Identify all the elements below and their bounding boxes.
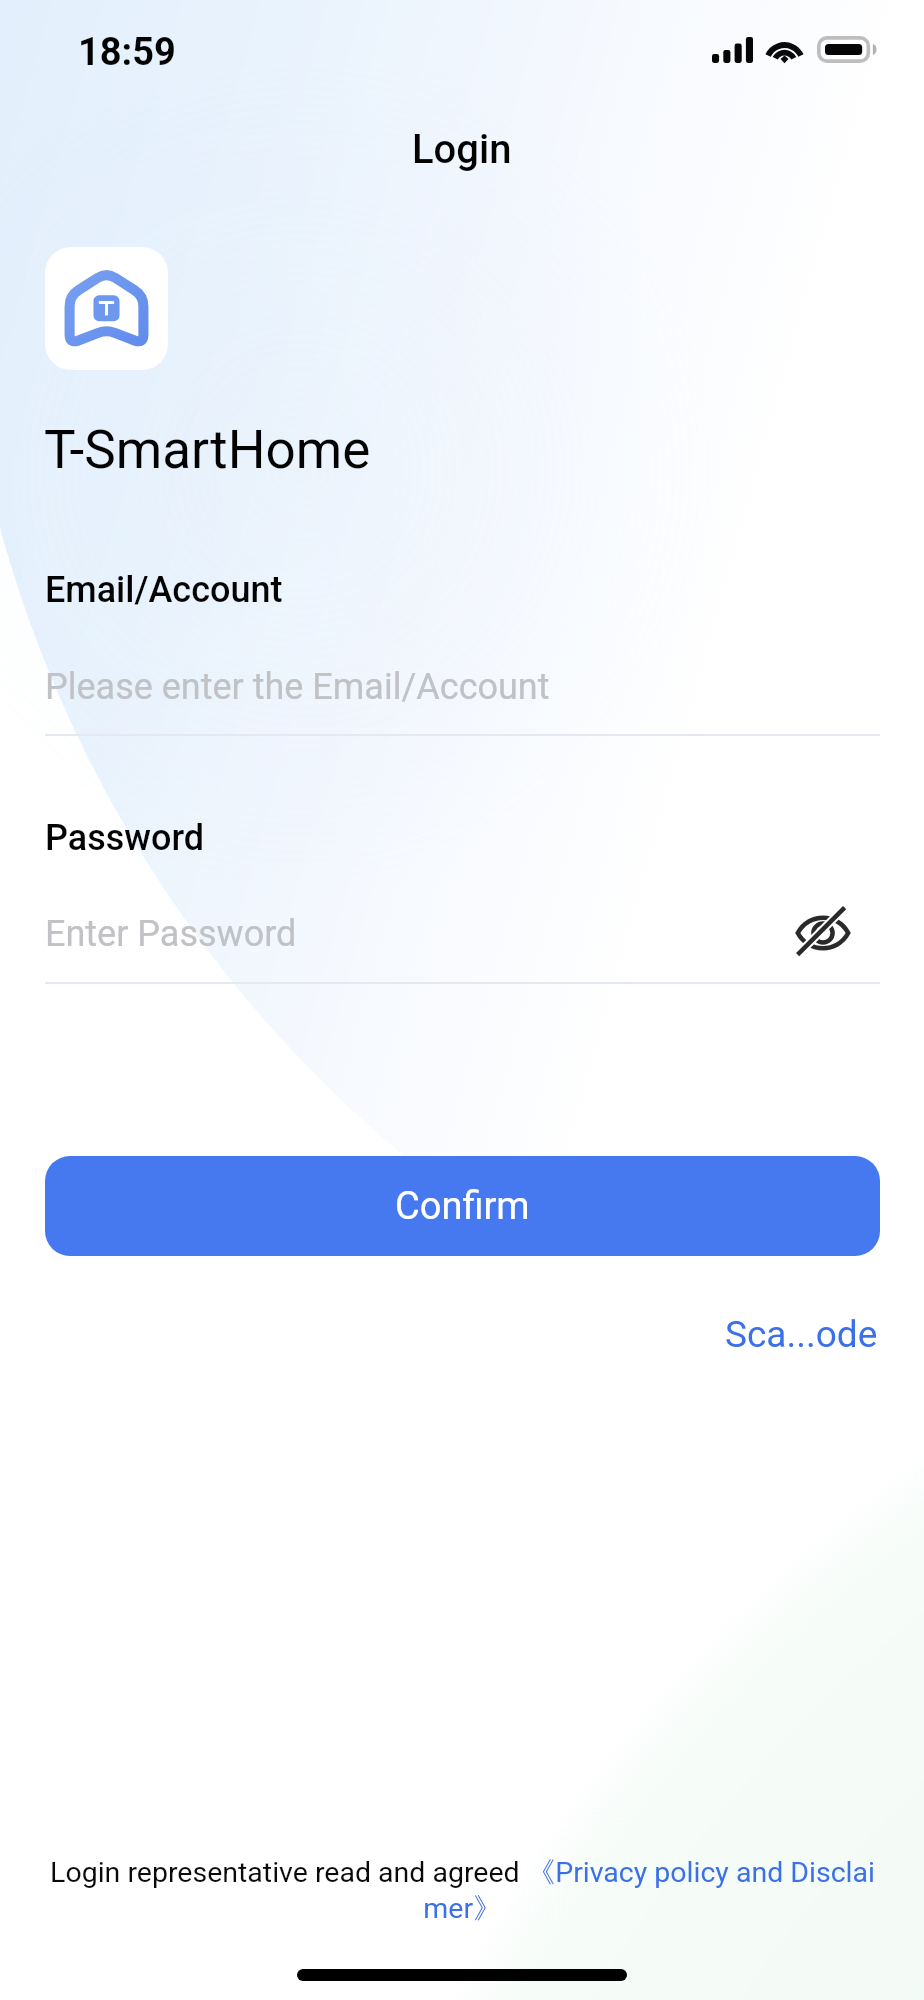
button[interactable]: Confirm xyxy=(45,1156,880,1256)
staticText: Login xyxy=(412,126,512,173)
staticText: Sca...ode xyxy=(725,1313,878,1356)
staticText: Enter Password xyxy=(45,913,297,955)
staticText: Email/Account xyxy=(45,569,283,611)
staticText: Login representative read and agreed 《Pr… xyxy=(50,1855,875,1891)
staticText: Password xyxy=(45,817,205,859)
staticText: mer》 xyxy=(423,1891,502,1927)
button[interactable]: Show password xyxy=(790,900,856,966)
staticText: Confirm xyxy=(395,1184,530,1229)
staticText: T-SmartHome xyxy=(44,419,371,481)
staticText: 18:59 xyxy=(78,30,176,75)
button[interactable]: Sca...ode xyxy=(721,1309,882,1360)
staticText: Please enter the Email/Account xyxy=(45,666,550,708)
